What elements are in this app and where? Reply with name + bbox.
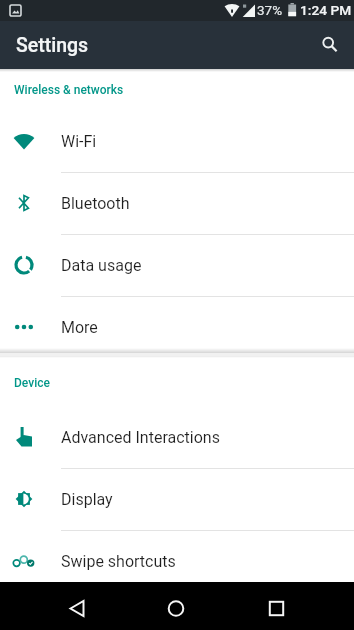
button[interactable]: Bluetooth (0, 172, 354, 234)
staticText: Wireless & networks (14, 83, 124, 97)
staticText: 37% (257, 2, 283, 18)
staticText: Advanced Interactions (61, 428, 220, 447)
button[interactable] (0, 582, 118, 630)
button[interactable]: Advanced Interactions (0, 406, 354, 468)
staticText: Wi-Fi (61, 132, 97, 151)
button[interactable]: Data usage (0, 234, 354, 296)
staticText: Swipe shortcuts (61, 552, 176, 571)
button[interactable] (306, 21, 354, 69)
staticText: More (61, 318, 98, 337)
button[interactable]: Display (0, 468, 354, 530)
staticText: 1:24 PM (300, 2, 352, 18)
button[interactable]: More (0, 296, 354, 358)
staticText: Device (14, 376, 50, 390)
button[interactable]: Swipe shortcuts (0, 530, 354, 592)
staticText: Settings (16, 34, 89, 57)
staticText: Display (61, 490, 113, 509)
button[interactable]: Wi-Fi (0, 110, 354, 172)
button[interactable] (236, 582, 354, 630)
button[interactable] (118, 582, 236, 630)
staticText: Bluetooth (61, 194, 130, 213)
staticText: Data usage (61, 256, 142, 275)
